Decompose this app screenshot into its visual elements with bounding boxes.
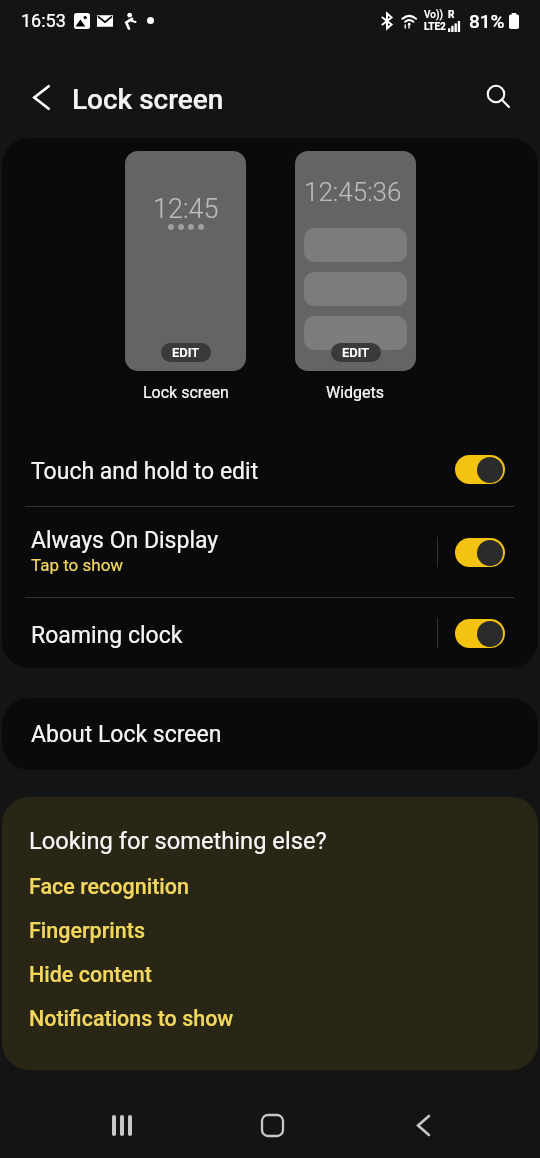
button[interactable]: EDIT	[161, 343, 211, 362]
staticText: 16:53	[21, 10, 66, 31]
staticText: Lock screen	[72, 83, 224, 116]
staticText: R	[448, 9, 455, 21]
button[interactable]: Home	[197, 1092, 348, 1158]
staticText: Vo))	[424, 9, 443, 21]
button[interactable]: EDIT	[331, 343, 381, 362]
staticText: Notifications to show	[29, 1006, 234, 1031]
button[interactable]: About Lock screen	[2, 698, 538, 770]
staticText: EDIT	[172, 345, 200, 360]
button[interactable]: Touch and hold to edit	[2, 433, 538, 506]
button[interactable]: Hide content	[2, 952, 538, 996]
button[interactable]: Toggle	[455, 455, 505, 484]
staticText: 12:45:36	[304, 177, 402, 207]
staticText: LTE2	[424, 21, 446, 33]
button[interactable]: Face recognition	[2, 864, 538, 908]
staticText: Touch and hold to edit	[31, 458, 259, 485]
staticText: Face recognition	[29, 874, 189, 899]
button[interactable]: Roaming clock	[2, 598, 538, 668]
button[interactable]: Navigate up	[17, 75, 65, 123]
button[interactable]: Back	[348, 1092, 499, 1158]
button[interactable]: 12:45	[125, 151, 246, 371]
staticText: Lock screen	[143, 383, 229, 402]
staticText: Tap to show	[31, 555, 124, 575]
button[interactable]: Toggle	[455, 538, 505, 567]
staticText: EDIT	[342, 345, 370, 360]
button[interactable]: Toggle	[455, 619, 505, 648]
staticText: Hide content	[29, 962, 152, 987]
button[interactable]: Notifications to show	[2, 996, 538, 1040]
button[interactable]: Recent apps	[47, 1092, 197, 1158]
button[interactable]: Fingerprints	[2, 908, 538, 952]
button[interactable]: 12:45:36	[295, 151, 416, 371]
staticText: Roaming clock	[31, 622, 183, 649]
staticText: Always On Display	[31, 527, 219, 554]
staticText: 12:45	[153, 193, 219, 225]
button[interactable]: Search	[475, 75, 523, 123]
staticText: Widgets	[326, 383, 385, 402]
staticText: Fingerprints	[29, 918, 145, 943]
button[interactable]: Always On Display	[2, 507, 538, 597]
staticText: 81%	[469, 10, 505, 32]
staticText: Looking for something else?	[29, 827, 327, 855]
staticText: About Lock screen	[31, 721, 222, 748]
